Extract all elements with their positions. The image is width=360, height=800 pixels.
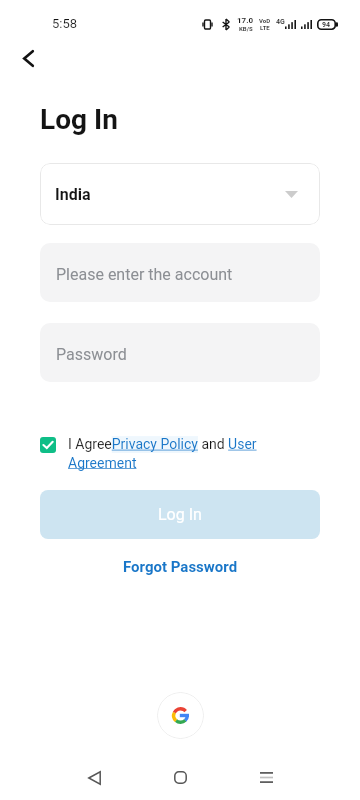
staticText: India [55,185,91,204]
staticText: Please enter the account [56,265,233,284]
staticText: Password [56,345,127,364]
staticText: Log In [40,103,118,136]
button[interactable]: Password [40,323,320,382]
staticText: 5:58 [52,16,78,31]
button[interactable]: Forgot Password [123,558,238,576]
button[interactable]: Back [70,755,118,800]
staticText: LTE [260,24,270,31]
staticText: 4G [276,18,285,26]
button[interactable]: India [40,163,320,225]
staticText: Log In [158,505,202,524]
button[interactable]: Back [8,42,48,74]
button[interactable]: Home [156,755,204,800]
button[interactable]: I agree checkbox [40,437,56,453]
button[interactable]: I AgreePrivacy Policy and User Agreement [68,436,320,471]
staticText: KB/S [239,25,253,32]
button[interactable]: Please enter the account [40,243,320,302]
staticText: 94 [322,21,331,29]
button[interactable]: Recents [242,755,290,800]
staticText: VoD [259,17,271,24]
button[interactable]: Log In [40,490,320,539]
button[interactable]: Sign in with Google [157,692,204,739]
staticText: 17.0 [237,16,254,25]
